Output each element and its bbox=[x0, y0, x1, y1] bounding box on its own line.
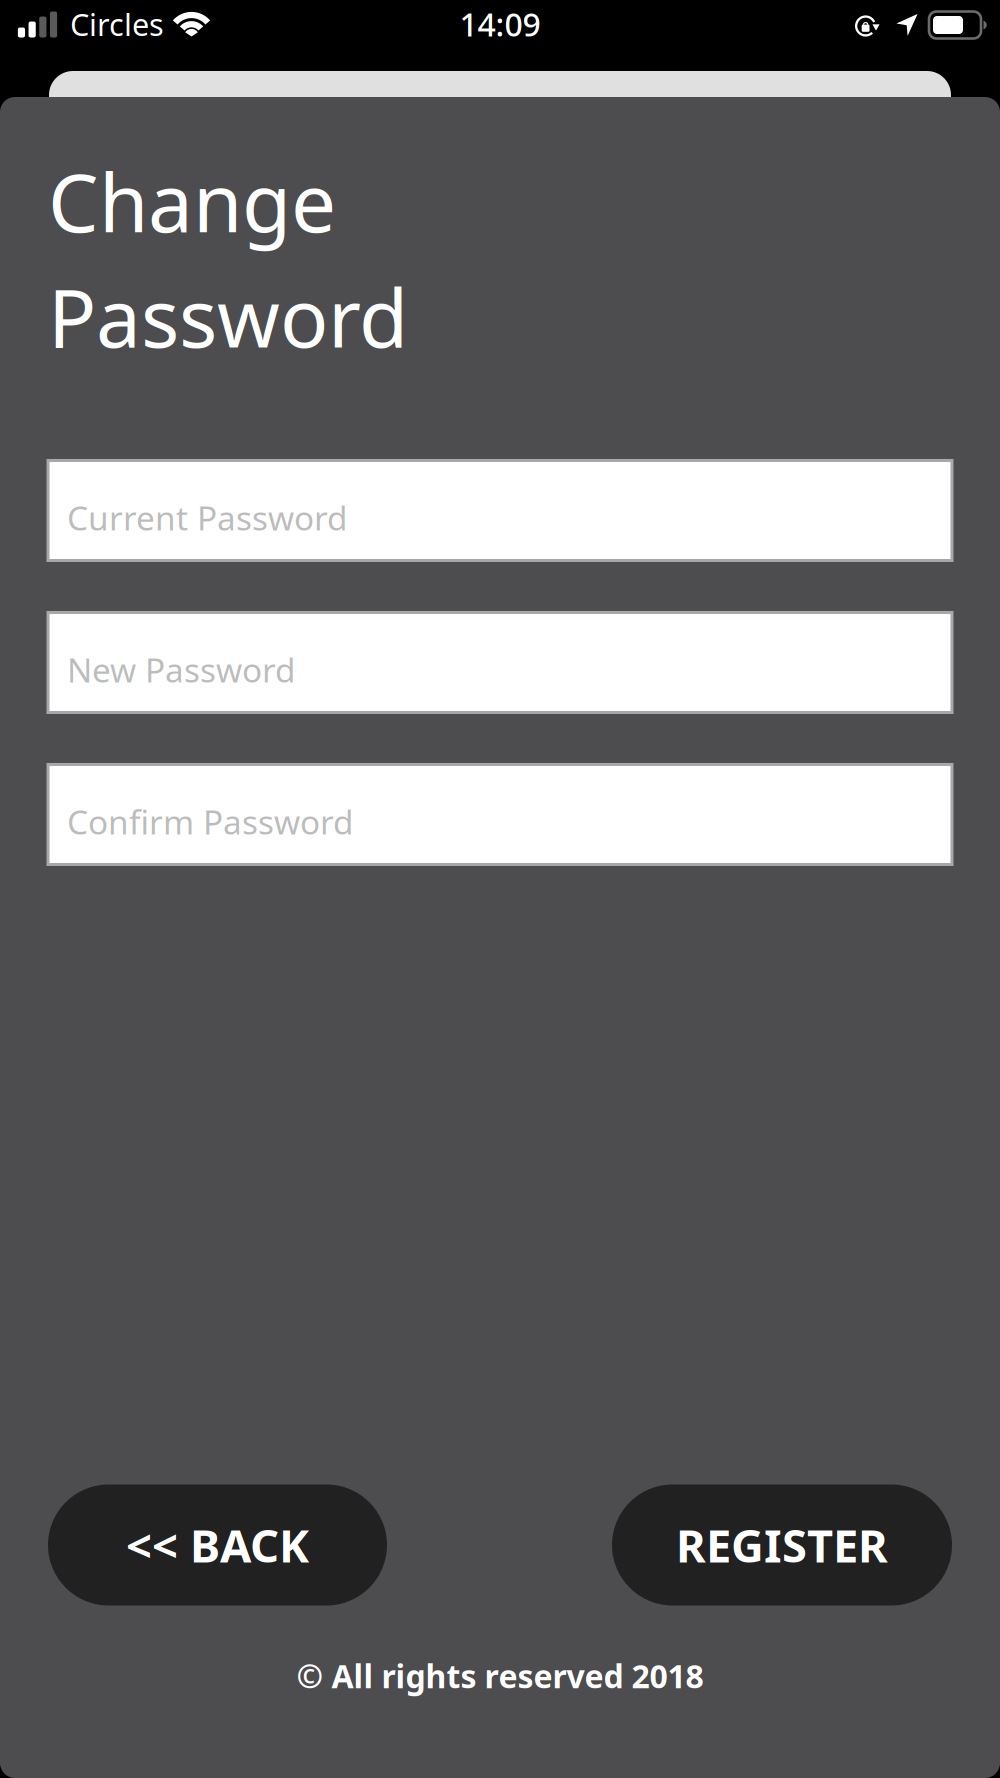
staticText: © All rights reserved 2018 bbox=[296, 1654, 703, 1697]
staticText: Confirm Password bbox=[67, 799, 354, 844]
button[interactable]: << BACK bbox=[48, 1484, 387, 1605]
staticText: 14:09 bbox=[459, 3, 540, 45]
staticText: Change bbox=[48, 148, 336, 254]
staticText: Password bbox=[48, 263, 408, 369]
button[interactable]: Current Password bbox=[48, 460, 952, 560]
button[interactable]: Confirm Password bbox=[48, 764, 952, 864]
button[interactable]: New Password bbox=[48, 612, 952, 712]
staticText: New Password bbox=[67, 647, 296, 692]
staticText: REGISTER bbox=[676, 1515, 888, 1575]
staticText: Current Password bbox=[67, 495, 348, 540]
staticText: Circles bbox=[70, 4, 164, 44]
staticText: << BACK bbox=[126, 1515, 309, 1575]
button[interactable]: REGISTER bbox=[612, 1484, 952, 1605]
